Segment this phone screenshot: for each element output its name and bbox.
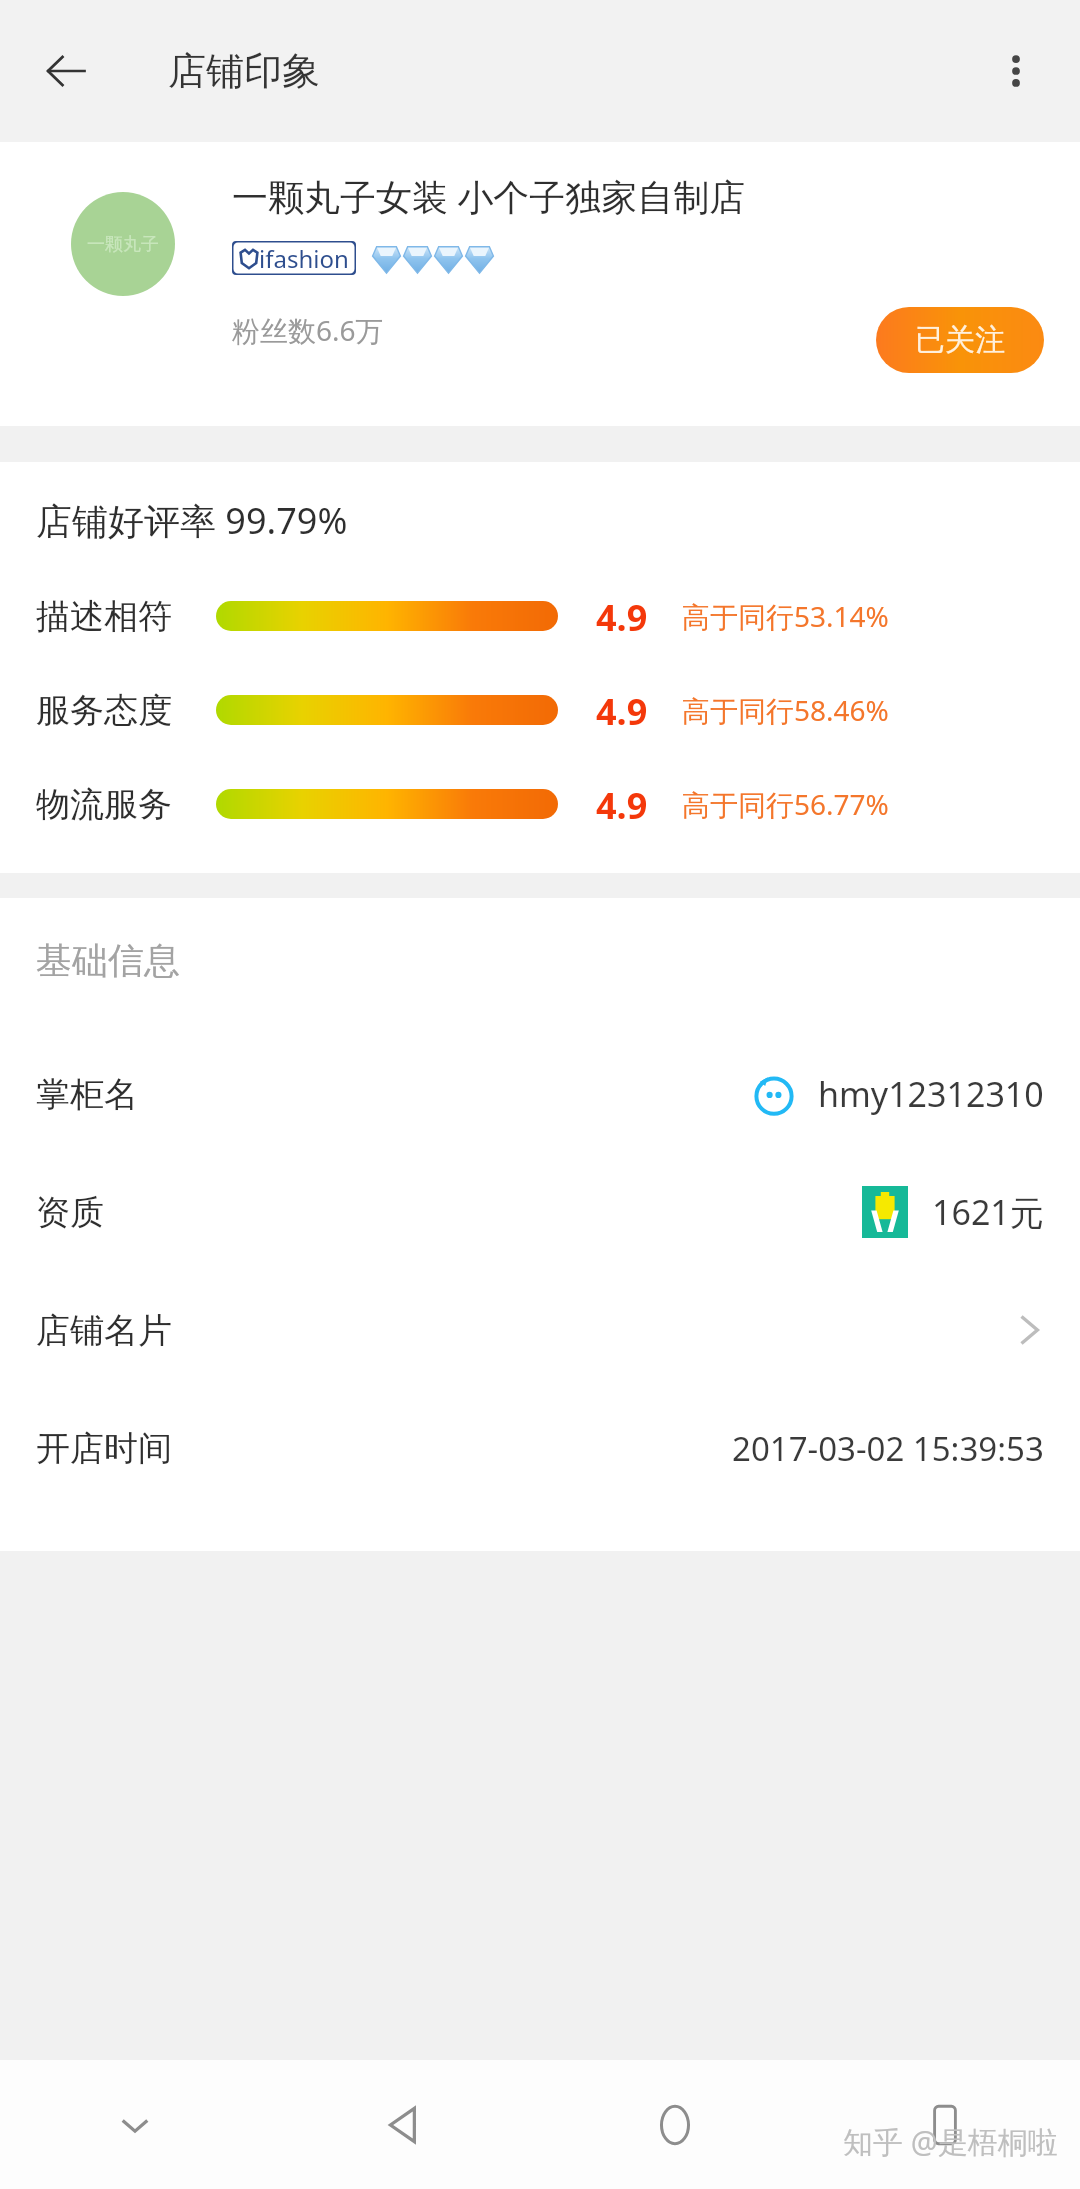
staticText: hmy12312310 [818,1071,1044,1117]
staticText: 4.9 [596,781,648,827]
staticText: 店铺名片 [36,1309,172,1352]
button[interactable]: 开店时间 [0,1389,1080,1507]
button[interactable]: Hide keyboard [0,2060,270,2189]
button[interactable]: 一颗丸子 [71,192,175,296]
staticText: 服务态度 [36,689,172,732]
staticText: 店铺印象 [168,47,320,95]
staticText: 开店时间 [36,1427,172,1470]
button[interactable]: 服务态度 [0,687,1080,733]
staticText: 资质 [36,1191,104,1234]
staticText: 粉丝数6.6万 [232,311,384,349]
button[interactable]: 掌柜名 [0,1035,1080,1153]
button[interactable]: 已关注 [876,307,1044,373]
button[interactable]: 描述相符 [0,593,1080,639]
staticText: 物流服务 [36,783,172,826]
staticText: 4.9 [596,593,648,639]
button[interactable]: 物流服务 [0,781,1080,827]
button[interactable]: More options [976,31,1056,111]
staticText: ifashion [259,242,349,275]
button[interactable]: 资质 [0,1153,1080,1271]
staticText: 店铺好评率 99.79% [36,496,348,545]
staticText: 高于同行58.46% [682,691,889,729]
staticText: 1621元 [932,1189,1044,1235]
staticText: 已关注 [915,321,1005,359]
staticText: 知乎 @是梧桐啦 [843,2121,1058,2162]
button[interactable]: 店铺名片 [0,1271,1080,1389]
staticText: 2017-03-02 15:39:53 [732,1426,1044,1471]
button[interactable]: Back [270,2060,540,2189]
button[interactable]: Recent apps [810,2060,1080,2189]
staticText: 基础信息 [36,938,180,983]
staticText: 高于同行56.77% [682,785,889,823]
staticText: 描述相符 [36,595,172,638]
button[interactable]: Back [28,33,104,109]
staticText: 4.9 [596,687,648,733]
staticText: 高于同行53.14% [682,597,889,635]
staticText: 一颗丸子女装 小个子独家自制店 [232,172,746,221]
button[interactable]: Home [540,2060,810,2189]
staticText: 掌柜名 [36,1073,138,1116]
staticText: 一颗丸子 [87,233,159,256]
